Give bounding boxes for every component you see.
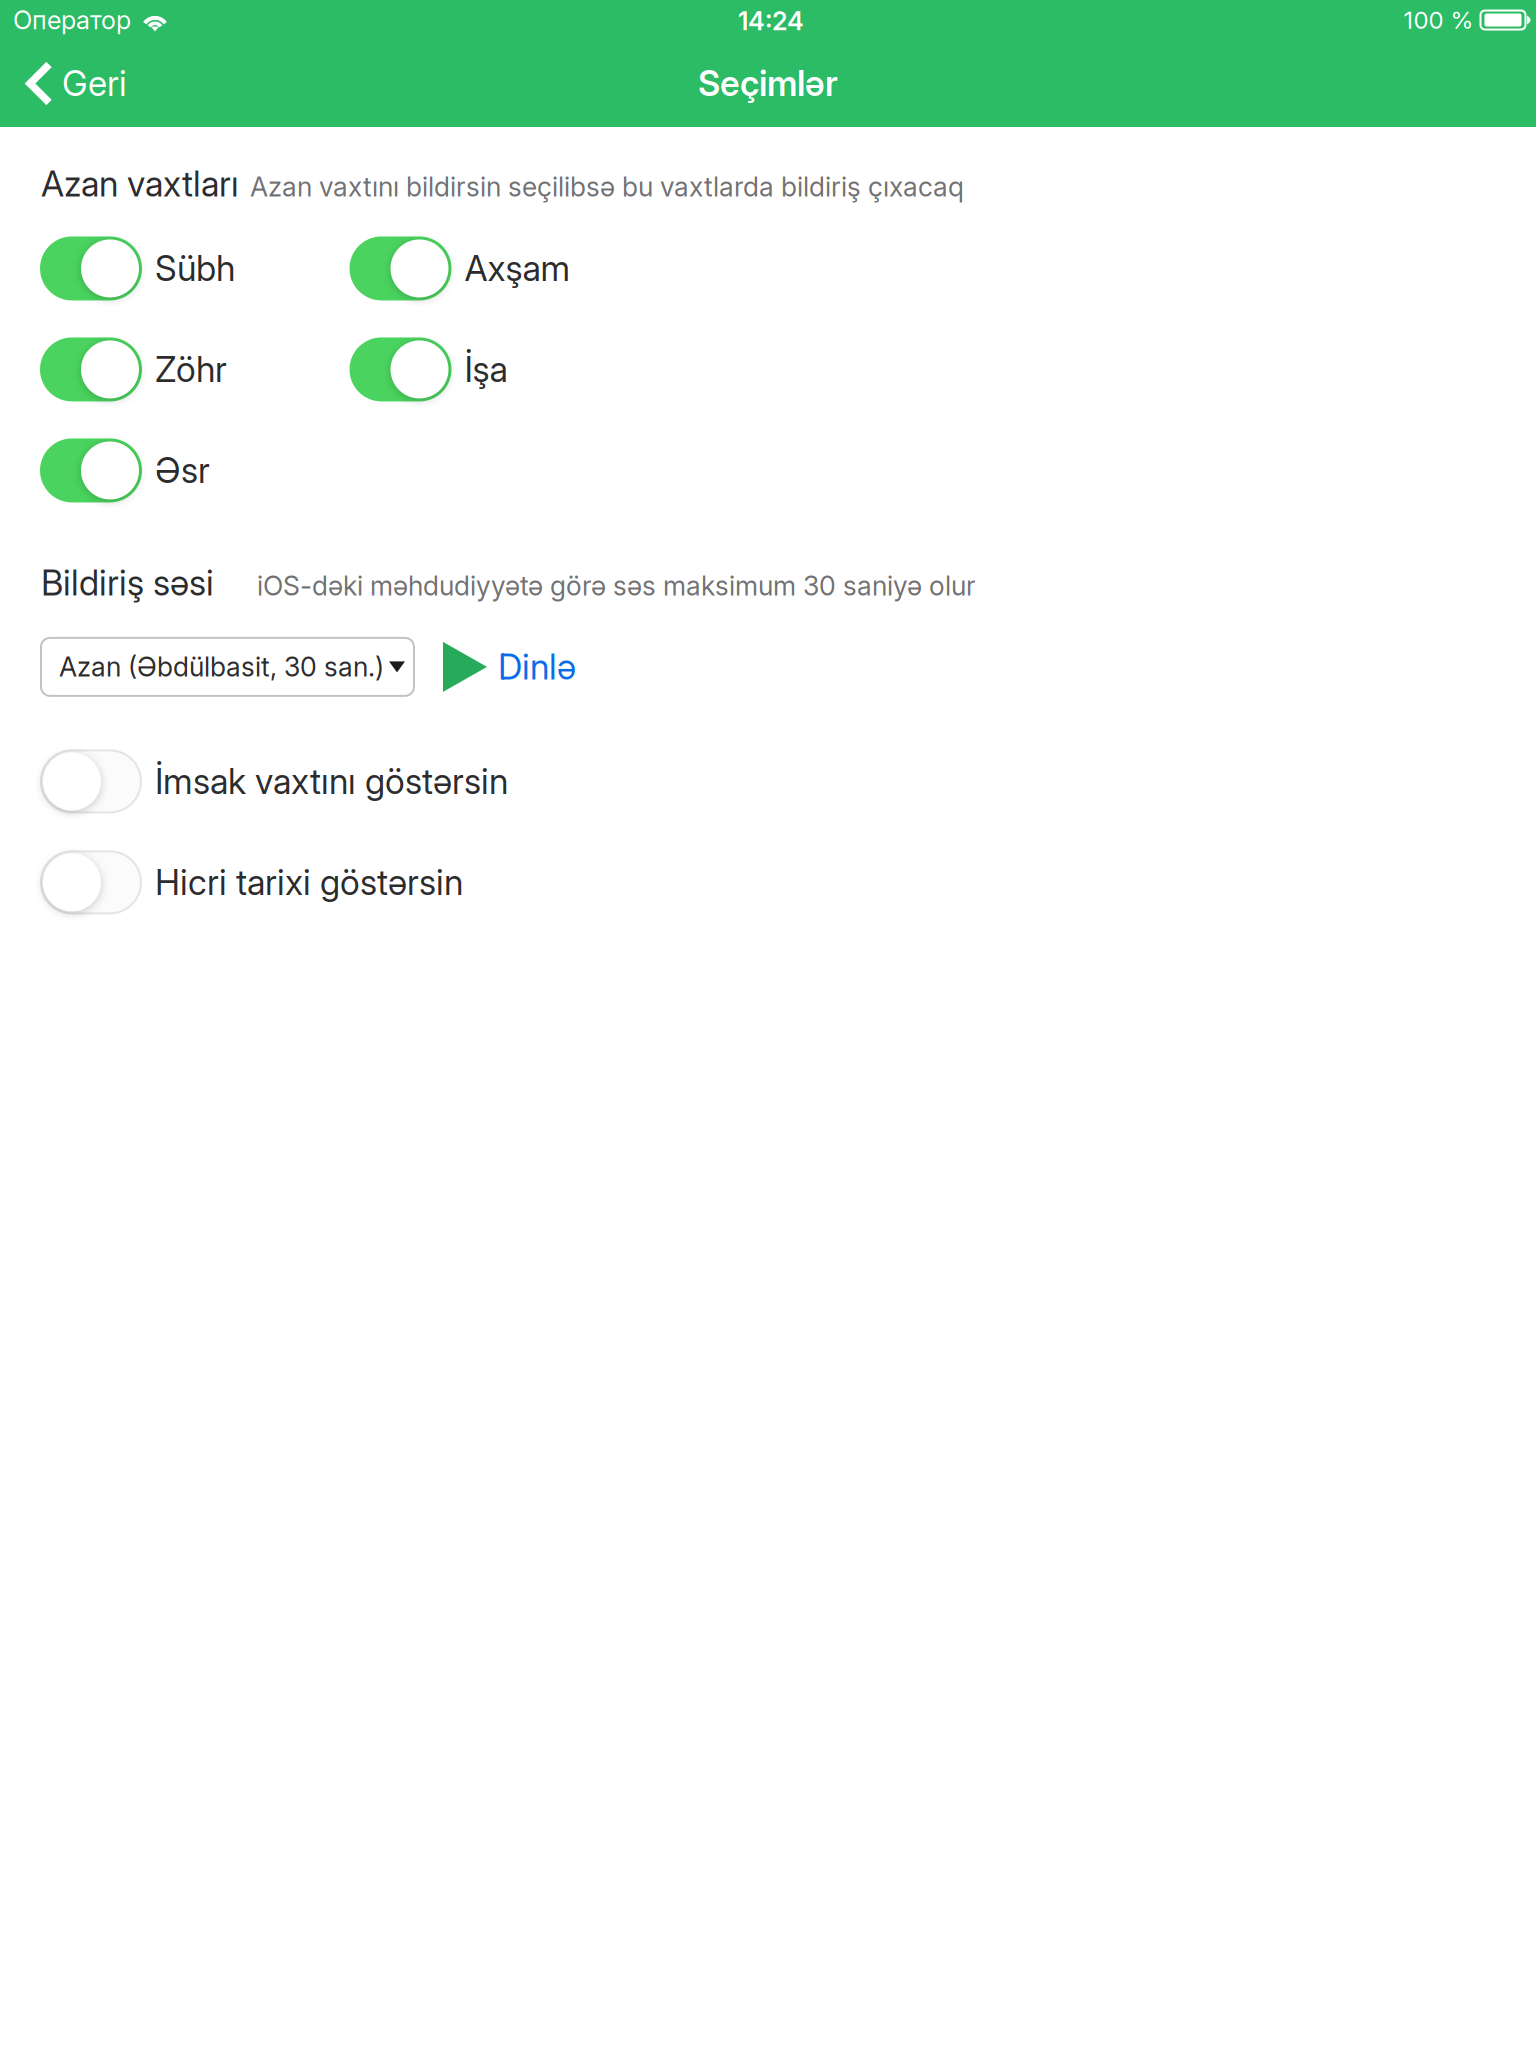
staticText: İşa [464,348,507,390]
staticText: Dinlə [498,646,576,688]
staticText: 100 % [1403,5,1473,34]
button[interactable]: Əsr [41,420,210,521]
staticText: Azan (Əbdülbasit, 30 san.) [59,651,384,683]
button[interactable]: Sübh [41,218,235,319]
staticText: Axşam [464,247,570,289]
button[interactable]: Axşam [350,218,570,319]
staticText: Seçimlər [698,62,838,104]
staticText: Azan vaxtını bildirsin seçilibsə bu vaxt… [250,171,964,203]
staticText: Əsr [155,449,210,491]
staticText: İmsak vaxtını göstərsin [155,760,508,802]
staticText: Geri [62,62,127,104]
staticText: Sübh [155,247,235,289]
button[interactable]: Hicri tarixi göstərsin [41,832,463,933]
button[interactable]: Azan (Əbdülbasit, 30 san.) [41,638,414,696]
button[interactable]: Zöhr [41,319,227,420]
staticText: Оператор [13,5,131,35]
button[interactable]: İmsak vaxtını göstərsin [41,731,508,832]
staticText: 14:24 [738,6,804,36]
button[interactable]: Dinlə [414,638,596,696]
staticText: Bildiriş səsi [41,562,214,604]
button[interactable]: Geri [0,40,149,127]
staticText: iOS-dəki məhdudiyyətə görə səs maksimum … [257,570,976,602]
button[interactable]: İşa [350,319,507,420]
staticText: Azan vaxtları [41,163,239,205]
staticText: Zöhr [155,348,227,390]
staticText: Hicri tarixi göstərsin [155,861,463,903]
